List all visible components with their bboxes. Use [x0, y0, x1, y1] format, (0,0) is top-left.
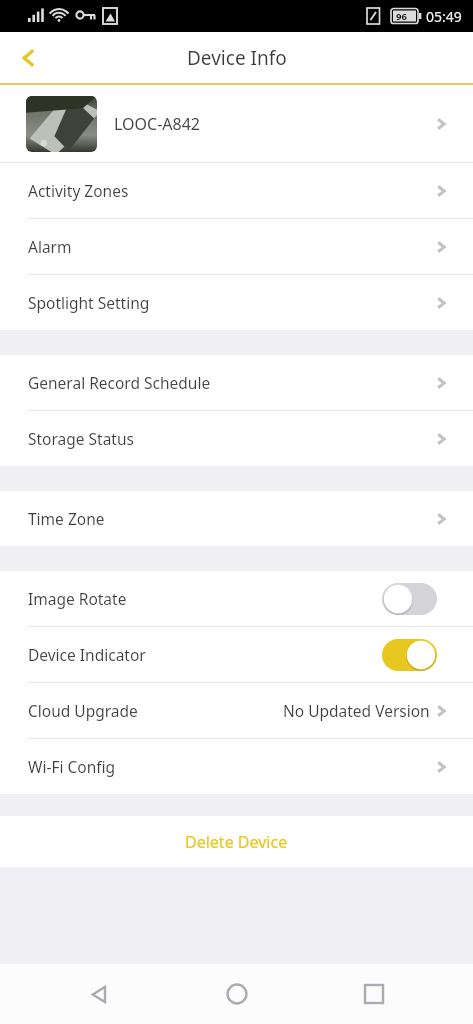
- staticText: LOOC-A842: [114, 113, 201, 135]
- button[interactable]: Back: [61, 964, 137, 1024]
- button[interactable]: Wi-Fi Config: [0, 739, 473, 794]
- staticText: Image Rotate: [28, 588, 127, 609]
- button[interactable]: Recents: [336, 964, 412, 1024]
- button[interactable]: Image Rotate: [0, 571, 473, 627]
- staticText: Delete Device: [185, 831, 288, 853]
- staticText: Cloud Upgrade: [28, 700, 138, 721]
- staticText: Activity Zones: [28, 180, 129, 201]
- button[interactable]: Activity Zones: [0, 163, 473, 219]
- staticText: Wi-Fi Config: [28, 756, 116, 777]
- button[interactable]: Storage Status: [0, 411, 473, 466]
- staticText: Time Zone: [28, 508, 105, 529]
- staticText: Device Info: [187, 45, 287, 71]
- button[interactable]: LOOC-A842: [0, 85, 473, 163]
- staticText: Storage Status: [28, 428, 134, 449]
- staticText: Alarm: [28, 236, 72, 257]
- other: Image Rotate: [382, 583, 437, 615]
- button[interactable]: Home: [199, 964, 275, 1024]
- staticText: Device Indicator: [28, 644, 146, 665]
- button[interactable]: Alarm: [0, 219, 473, 275]
- button[interactable]: Cloud Upgrade: [0, 683, 473, 739]
- staticText: 05:49: [426, 7, 462, 26]
- button[interactable]: Spotlight Setting: [0, 275, 473, 330]
- staticText: No Updated Version: [283, 700, 430, 721]
- button[interactable]: Device Indicator: [0, 627, 473, 683]
- staticText: 96: [396, 10, 407, 23]
- button[interactable]: General Record Schedule: [0, 355, 473, 411]
- staticText: Spotlight Setting: [28, 292, 150, 313]
- staticText: General Record Schedule: [28, 372, 211, 393]
- button[interactable]: Back: [0, 32, 58, 83]
- button[interactable]: Time Zone: [0, 491, 473, 546]
- other: Device Indicator: [382, 639, 437, 671]
- button[interactable]: Delete Device: [0, 816, 473, 867]
